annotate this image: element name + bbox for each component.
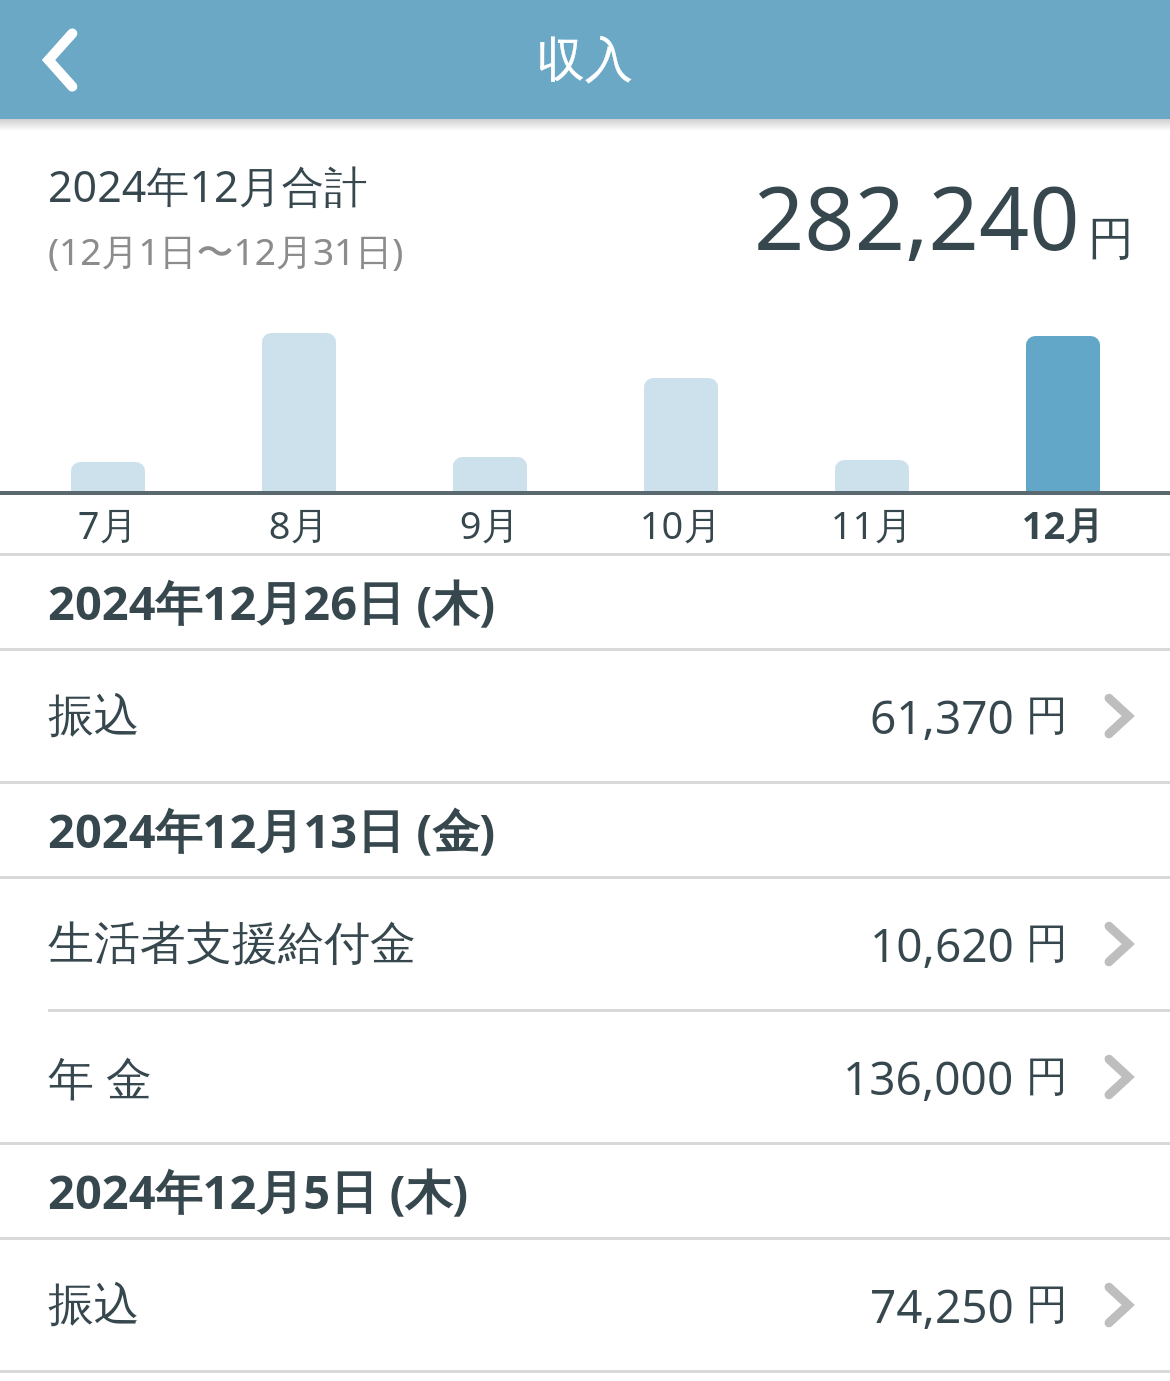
staticText: 収入 bbox=[537, 30, 633, 90]
staticText: 円 bbox=[1026, 918, 1068, 971]
staticText: 136,000 bbox=[843, 1046, 1014, 1109]
button[interactable]: 振込 bbox=[0, 651, 1170, 781]
staticText: 10,620 bbox=[870, 913, 1014, 976]
staticText: 2024年12月26日 (木) bbox=[48, 570, 496, 634]
staticText: 7月 bbox=[12, 498, 203, 550]
staticText: 円 bbox=[1088, 210, 1134, 268]
staticText: 生活者支援給付金 bbox=[48, 915, 870, 973]
staticText: 12月 bbox=[967, 498, 1158, 550]
staticText: 10月 bbox=[585, 498, 776, 550]
staticText: 74,250 bbox=[870, 1274, 1014, 1337]
staticText: 2024年12月13日 (金) bbox=[48, 798, 496, 862]
staticText: (12月1日〜12月31日) bbox=[48, 225, 404, 276]
staticText: 振込 bbox=[48, 687, 870, 745]
button[interactable]: Back bbox=[0, 0, 120, 119]
staticText: 282,240 bbox=[754, 156, 1080, 276]
staticText: 8月 bbox=[203, 498, 394, 550]
staticText: 年 金 bbox=[48, 1046, 843, 1109]
staticText: 2024年12月合計 bbox=[48, 156, 368, 215]
staticText: 円 bbox=[1026, 690, 1068, 743]
button[interactable]: 生活者支援給付金 bbox=[0, 879, 1170, 1009]
staticText: 円 bbox=[1026, 1051, 1068, 1104]
button[interactable]: 年 金 bbox=[0, 1012, 1170, 1142]
staticText: 円 bbox=[1026, 1279, 1068, 1332]
button[interactable]: 振込 bbox=[0, 1240, 1170, 1370]
staticText: 9月 bbox=[394, 498, 585, 550]
staticText: 振込 bbox=[48, 1276, 870, 1334]
staticText: 11月 bbox=[776, 498, 967, 550]
staticText: 2024年12月5日 (木) bbox=[48, 1159, 469, 1223]
staticText: 61,370 bbox=[870, 685, 1014, 748]
